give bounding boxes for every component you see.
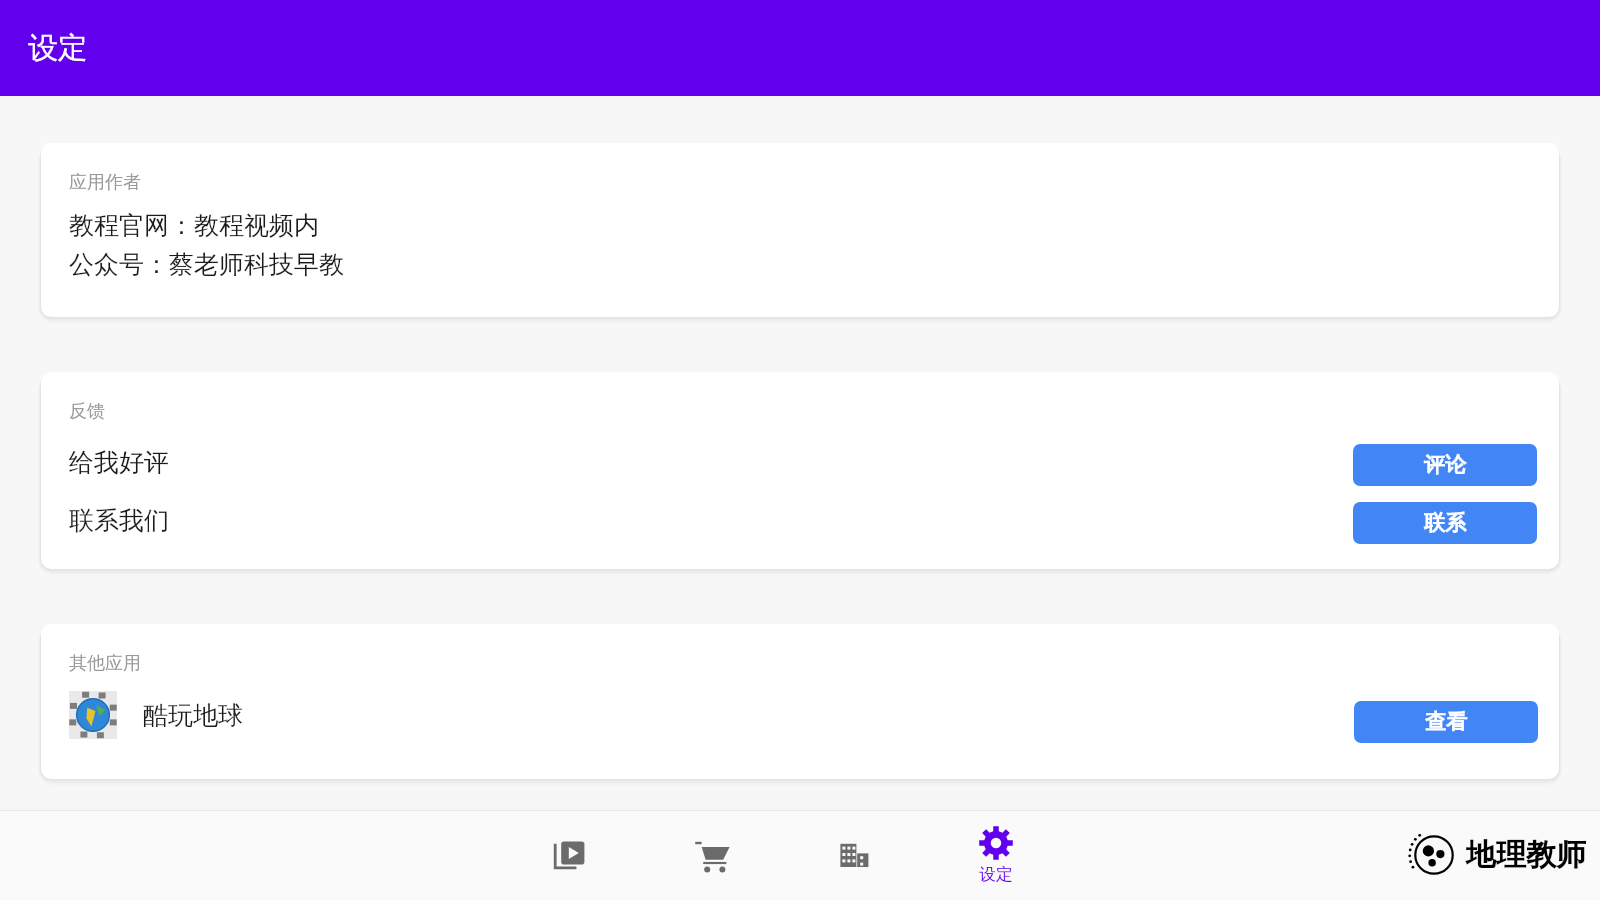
staticText: 地理教师 xyxy=(1466,836,1586,874)
staticText: 评论 xyxy=(1424,452,1466,478)
staticText: 公众号：蔡老师科技早教 xyxy=(69,249,344,280)
button[interactable]: 设定 xyxy=(925,810,1067,900)
staticText: 反馈 xyxy=(69,400,105,423)
button[interactable]: 评论 xyxy=(1353,444,1537,486)
staticText: 给我好评 xyxy=(69,447,169,478)
staticText: 酷玩地球 xyxy=(143,700,243,731)
staticText: 设定 xyxy=(28,29,88,67)
button[interactable]: 查看 xyxy=(1354,701,1538,743)
staticText: 教程官网：教程视频内 xyxy=(69,210,319,241)
staticText: 其他应用 xyxy=(69,652,141,675)
button[interactable]: 联系 xyxy=(1353,502,1537,544)
staticText: 联系 xyxy=(1424,510,1466,536)
button[interactable]: Store xyxy=(641,810,783,900)
staticText: 应用作者 xyxy=(69,171,141,194)
staticText: 设定 xyxy=(979,864,1013,885)
button[interactable]: Videos xyxy=(499,810,641,900)
staticText: 查看 xyxy=(1425,709,1467,735)
button[interactable]: 酷玩地球 xyxy=(69,691,117,739)
button[interactable]: Business xyxy=(783,810,925,900)
staticText: 联系我们 xyxy=(69,505,169,536)
